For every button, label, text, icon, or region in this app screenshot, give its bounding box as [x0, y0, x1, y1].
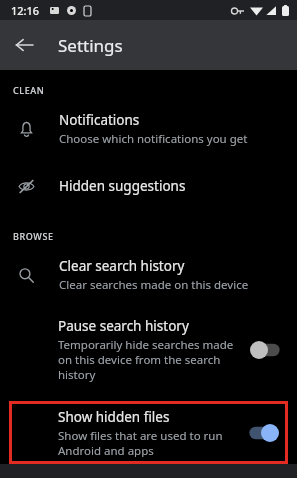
staticText: Show files that are used to run Android … [58, 428, 238, 457]
staticText: Clear search history [59, 257, 185, 275]
button[interactable]: Clear search history [0, 250, 297, 300]
staticText: BROWSE [13, 230, 54, 242]
staticText: Clear searches made on this device [59, 277, 249, 293]
staticText: 12:16 [11, 3, 40, 18]
staticText: Pause search history [58, 317, 189, 335]
button[interactable]: Notifications [0, 104, 297, 154]
staticText: Choose which notifications you get [59, 131, 248, 147]
staticText: Hidden suggestions [59, 177, 186, 195]
button[interactable]: Pause search history [0, 310, 297, 389]
staticText: CLEAN [13, 84, 45, 96]
button[interactable]: Back [6, 27, 42, 63]
button[interactable]: Show hidden files [9, 401, 288, 464]
button[interactable]: Hidden suggestions [0, 166, 297, 206]
staticText: Notifications [59, 111, 140, 129]
staticText: Temporarily hide searches made on this d… [58, 337, 241, 382]
button[interactable]: Toggle on [246, 423, 280, 443]
staticText: Show hidden files [58, 408, 170, 426]
button[interactable]: Toggle off [249, 340, 283, 360]
staticText: Settings [58, 34, 123, 57]
